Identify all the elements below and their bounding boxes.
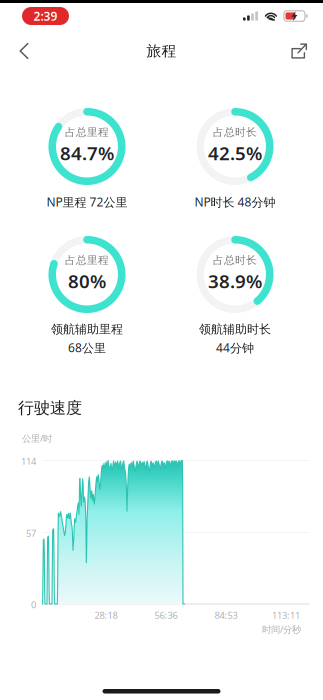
- staticText: 占总里程: [65, 126, 109, 139]
- button[interactable]: Back: [4, 30, 44, 72]
- staticText: 领航辅助里程: [51, 322, 123, 337]
- staticText: 旅程: [146, 42, 176, 60]
- staticText: 占总时长: [213, 126, 257, 139]
- staticText: 113:11: [272, 609, 300, 621]
- staticText: 84:53: [214, 609, 237, 621]
- staticText: 44分钟: [216, 340, 254, 356]
- staticText: 公里/时: [22, 432, 52, 444]
- staticText: 114: [21, 455, 36, 467]
- staticText: 68公里: [68, 340, 106, 356]
- staticText: 80%: [68, 269, 106, 293]
- staticText: 占总时长: [213, 254, 257, 267]
- staticText: 28:18: [94, 609, 117, 621]
- button[interactable]: Share: [279, 30, 319, 72]
- staticText: NP时长 48分钟: [194, 194, 275, 210]
- staticText: 占总里程: [65, 254, 109, 267]
- staticText: 84.7%: [60, 141, 114, 165]
- staticText: 2:39: [33, 8, 57, 24]
- staticText: NP里程 72公里: [46, 194, 127, 210]
- staticText: 行驶速度: [18, 398, 82, 418]
- staticText: 42.5%: [208, 141, 262, 165]
- staticText: 时间/分秒: [262, 623, 301, 635]
- staticText: 56:36: [154, 609, 177, 621]
- staticText: 领航辅助时长: [199, 322, 271, 337]
- staticText: 38.9%: [208, 269, 262, 293]
- staticText: 57: [26, 527, 36, 539]
- staticText: 0: [31, 598, 36, 611]
